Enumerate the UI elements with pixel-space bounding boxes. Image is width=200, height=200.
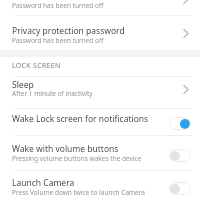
button[interactable] <box>0 109 200 135</box>
staticText: Sleep <box>12 79 34 91</box>
button[interactable] <box>169 117 191 130</box>
button[interactable] <box>0 57 200 108</box>
button[interactable] <box>0 136 200 169</box>
staticText: Press Volume down twice to launch Camera <box>12 188 145 197</box>
button[interactable] <box>169 149 191 162</box>
staticText: Launch Camera <box>12 177 75 189</box>
button[interactable] <box>0 16 200 50</box>
staticText: Password has been turned off <box>12 36 104 45</box>
staticText: Pressing volume buttons wakes the device <box>12 154 142 163</box>
staticText: Wake Lock screen for notifications <box>12 113 149 125</box>
button[interactable] <box>169 182 191 195</box>
button[interactable] <box>0 0 200 15</box>
staticText: Wake with volume buttons <box>12 143 119 155</box>
staticText: Privacy protection password <box>12 25 125 37</box>
button[interactable] <box>0 170 200 200</box>
staticText: LOCK SCREEN <box>12 61 61 71</box>
staticText: Password has been turned off <box>12 1 104 10</box>
staticText: After 1 minute of inactivity <box>12 89 93 98</box>
